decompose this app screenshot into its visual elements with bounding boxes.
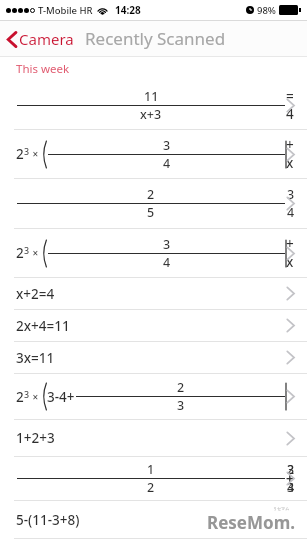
staticText: 5 xyxy=(147,204,155,221)
staticText: 2 xyxy=(16,145,24,163)
staticText: × xyxy=(30,246,41,260)
staticText: 2x+4=11 xyxy=(16,317,70,335)
button[interactable]: 2x+4=11 xyxy=(0,310,307,341)
button[interactable]: 5-(11-3+8) xyxy=(0,501,307,538)
staticText: リセマム xyxy=(273,506,290,511)
staticText: 2 xyxy=(147,479,155,496)
staticText: × xyxy=(30,390,41,404)
button[interactable]: 1 xyxy=(0,457,307,500)
staticText: 2 xyxy=(147,186,155,203)
button[interactable]: 1+2+3 xyxy=(0,420,307,456)
other: Open detail xyxy=(286,147,295,162)
other: Open detail xyxy=(286,389,295,404)
staticText: × xyxy=(30,147,41,161)
staticText: 3 xyxy=(163,236,171,253)
staticText: 3 xyxy=(163,137,171,154)
staticText: 5-(11-3+8) xyxy=(16,511,80,529)
staticText: 3 xyxy=(24,145,30,157)
staticText: T-Mobile HR xyxy=(38,4,93,17)
staticText: ReseMom. xyxy=(207,511,295,534)
button[interactable]: 2 xyxy=(0,229,307,277)
button[interactable]: 3x=11 xyxy=(0,342,307,373)
staticText: 14:28 xyxy=(115,3,141,17)
staticText: 1+2+3 xyxy=(16,429,55,447)
staticText: Recently Scanned xyxy=(85,27,226,50)
other: Open detail xyxy=(286,318,295,333)
button[interactable]: 2 xyxy=(0,374,307,419)
staticText: 2 xyxy=(16,388,24,406)
button[interactable]: 11 xyxy=(0,81,307,129)
other: Open detail xyxy=(286,350,295,365)
staticText: 2 xyxy=(177,379,185,396)
staticText: 11 xyxy=(144,88,159,105)
button[interactable]: 2 xyxy=(0,179,307,228)
staticText: 3 xyxy=(24,388,30,400)
button[interactable]: x+2=4 xyxy=(0,278,307,309)
staticText: x+3 xyxy=(140,106,162,123)
staticText: 3 xyxy=(177,397,185,414)
staticText: x+2=4 xyxy=(16,285,55,303)
staticText: 4 xyxy=(163,254,171,271)
button[interactable]: 2 xyxy=(0,130,307,178)
other: Open detail xyxy=(286,196,295,211)
other: Open detail xyxy=(286,246,295,261)
other: Open detail xyxy=(286,431,295,446)
other: Open detail xyxy=(286,471,295,486)
staticText: Camera xyxy=(19,29,74,49)
other: Open detail xyxy=(286,286,295,301)
other: Open detail xyxy=(286,98,295,113)
staticText: This week xyxy=(16,61,70,77)
staticText: 4 xyxy=(163,155,171,172)
staticText: 3x=11 xyxy=(16,349,55,367)
staticText: 1 xyxy=(147,461,155,478)
staticText: 98% xyxy=(257,4,276,17)
staticText: 3 xyxy=(24,244,30,256)
button[interactable]: Camera xyxy=(0,24,79,54)
staticText: 2 xyxy=(16,244,24,262)
staticText: 3-4+ xyxy=(47,388,75,406)
